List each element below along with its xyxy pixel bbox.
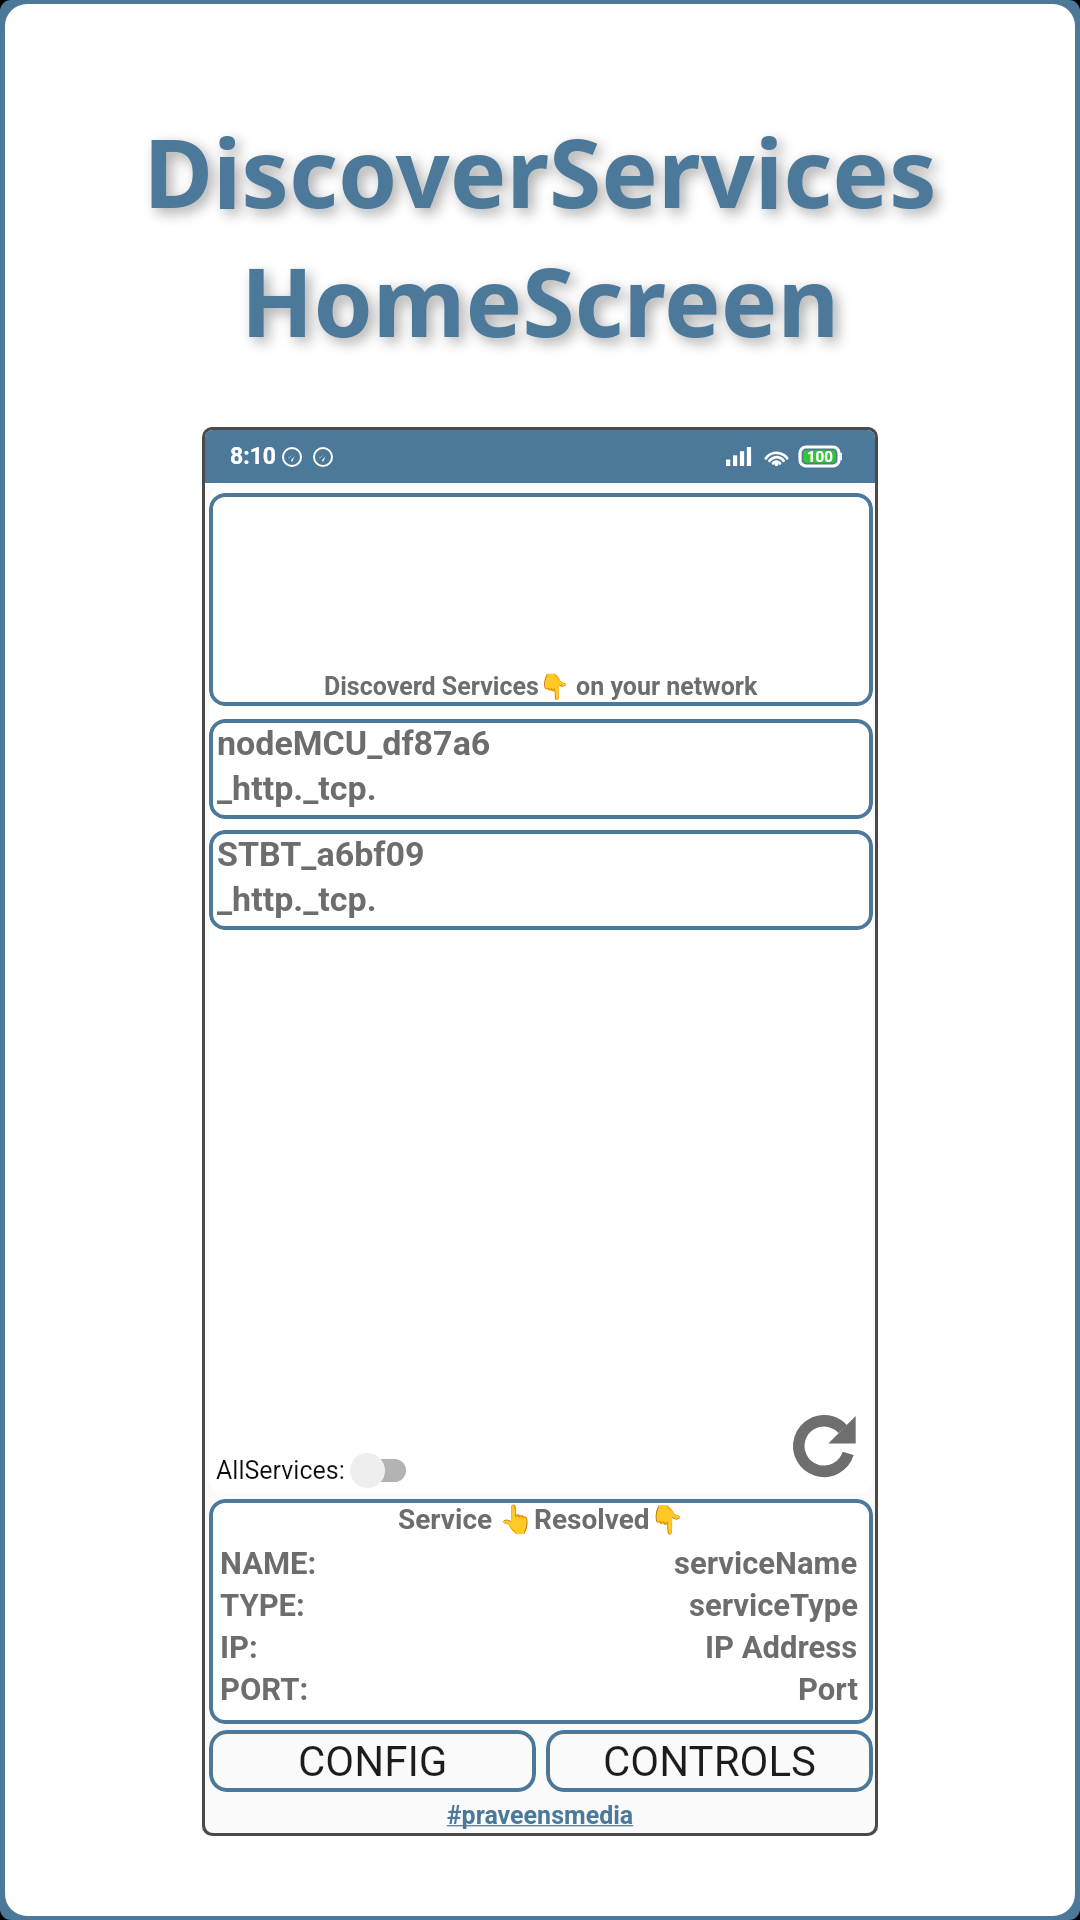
staticText: STBT_a6bf09 xyxy=(217,834,425,874)
staticText: 100 xyxy=(807,448,833,466)
button[interactable]: CONTROLS xyxy=(546,1730,873,1792)
button[interactable]: #praveensmedia xyxy=(205,1801,875,1830)
staticText: TYPE: xyxy=(220,1587,305,1623)
staticText: serviceType xyxy=(689,1587,858,1623)
button[interactable]: CONFIG xyxy=(209,1730,536,1792)
button[interactable]: nodeMCU_df87a6 xyxy=(209,719,873,819)
staticText: DiscoverServices xyxy=(5,106,1075,235)
staticText: HomeScreen xyxy=(5,235,1075,364)
staticText: nodeMCU_df87a6 xyxy=(217,723,491,763)
staticText: IP Address xyxy=(705,1629,858,1665)
button[interactable]: Toggle all services xyxy=(350,1452,406,1488)
staticText: NAME: xyxy=(220,1545,317,1581)
staticText: Service 👆Resolved👇 xyxy=(398,1503,685,1536)
staticText: AllServices: xyxy=(216,1456,345,1485)
staticText: serviceName xyxy=(674,1545,858,1581)
staticText: _http._tcp. xyxy=(217,768,377,808)
staticText: CONFIG xyxy=(298,1737,448,1786)
staticText: 8:10 xyxy=(230,443,277,470)
staticText: Port xyxy=(798,1671,858,1707)
button[interactable]: Discoverd Services👇 on your network xyxy=(209,493,873,706)
staticText: Discoverd Services👇 on your network xyxy=(324,672,758,701)
button[interactable]: Refresh xyxy=(793,1415,859,1481)
staticText: PORT: xyxy=(220,1671,309,1707)
staticText: CONTROLS xyxy=(603,1737,816,1786)
staticText: IP: xyxy=(220,1629,258,1665)
staticText: _http._tcp. xyxy=(217,879,377,919)
button[interactable]: STBT_a6bf09 xyxy=(209,830,873,930)
